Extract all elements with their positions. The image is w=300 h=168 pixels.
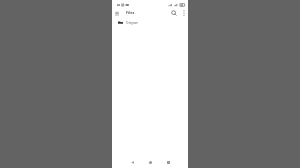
button[interactable]: Telegram [112, 17, 188, 28]
staticText: Telegram [126, 21, 139, 25]
button[interactable]: Navigation menu [112, 8, 122, 17]
button[interactable]: Home [143, 156, 158, 168]
button[interactable]: More options [179, 8, 188, 17]
button[interactable]: Back [125, 156, 140, 168]
button[interactable]: Search [168, 8, 179, 17]
button[interactable]: Recent apps [161, 156, 176, 168]
staticText: Files [126, 10, 135, 15]
